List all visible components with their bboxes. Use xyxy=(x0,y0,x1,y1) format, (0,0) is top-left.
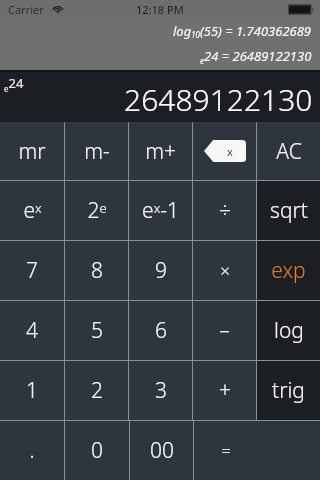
button[interactable]: exp xyxy=(257,241,320,300)
staticText: 4 xyxy=(26,316,38,345)
staticText: . xyxy=(29,436,35,465)
staticText: exp xyxy=(271,256,306,285)
staticText: 1 xyxy=(26,376,38,405)
staticText: 12:18 PM xyxy=(136,2,184,17)
staticText: sqrt xyxy=(270,196,308,225)
button[interactable]: – xyxy=(193,301,256,360)
button[interactable]: . xyxy=(0,421,64,480)
button[interactable]: ÷ xyxy=(193,181,256,240)
staticText: ex xyxy=(23,196,42,225)
staticText: 8 xyxy=(91,256,103,285)
button[interactable]: 4 xyxy=(0,301,64,360)
staticText: 9 xyxy=(155,256,167,285)
staticText: 6 xyxy=(155,316,167,345)
staticText: – xyxy=(219,316,230,345)
button[interactable]: ex xyxy=(0,181,64,240)
button[interactable]: log xyxy=(257,301,320,360)
staticText: 2 xyxy=(91,376,103,405)
button[interactable]: 2e xyxy=(65,181,128,240)
button[interactable]: 3 xyxy=(129,361,192,420)
staticText: 26489122130 xyxy=(124,79,313,120)
staticText: trig xyxy=(272,376,305,405)
button[interactable]: 8 xyxy=(65,241,128,300)
button[interactable]: Backspace xyxy=(193,122,256,180)
staticText: × xyxy=(220,259,230,282)
staticText: log xyxy=(274,316,304,345)
staticText: + xyxy=(219,376,231,405)
staticText: 0 xyxy=(91,436,103,465)
staticText: e24 xyxy=(4,74,24,94)
button[interactable]: + xyxy=(193,361,256,420)
staticText: m+ xyxy=(145,137,176,166)
staticText: m- xyxy=(84,137,110,166)
button[interactable]: 9 xyxy=(129,241,192,300)
staticText: = xyxy=(221,439,231,462)
button[interactable]: m- xyxy=(65,122,128,180)
staticText: x xyxy=(227,144,233,159)
button[interactable]: 7 xyxy=(0,241,64,300)
staticText: log10(55) = 1.740362689 xyxy=(173,22,312,41)
staticText: mr xyxy=(18,137,46,166)
button[interactable]: AC xyxy=(257,122,320,180)
button[interactable]: m+ xyxy=(129,122,192,180)
button[interactable]: 6 xyxy=(129,301,192,360)
staticText: 5 xyxy=(91,316,103,345)
button[interactable]: 0 xyxy=(65,421,129,480)
button[interactable]: × xyxy=(193,241,256,300)
staticText: Carrier xyxy=(8,2,44,17)
button[interactable]: 5 xyxy=(65,301,128,360)
button[interactable]: trig xyxy=(257,361,320,420)
staticText: 00 xyxy=(150,436,174,465)
staticText: 3 xyxy=(155,376,167,405)
button[interactable]: = xyxy=(194,421,257,480)
button[interactable]: 00 xyxy=(130,421,193,480)
button[interactable]: ex-1 xyxy=(129,181,192,240)
button[interactable]: sqrt xyxy=(257,181,320,240)
staticText: e24 = 26489122130 xyxy=(200,47,312,67)
staticText: 7 xyxy=(26,256,38,285)
staticText: ex-1 xyxy=(142,196,179,225)
button[interactable]: mr xyxy=(0,122,64,180)
staticText: 2e xyxy=(87,196,107,225)
staticText: AC xyxy=(276,137,302,166)
staticText: ÷ xyxy=(219,196,231,225)
button[interactable]: 2 xyxy=(65,361,128,420)
button[interactable]: 1 xyxy=(0,361,64,420)
